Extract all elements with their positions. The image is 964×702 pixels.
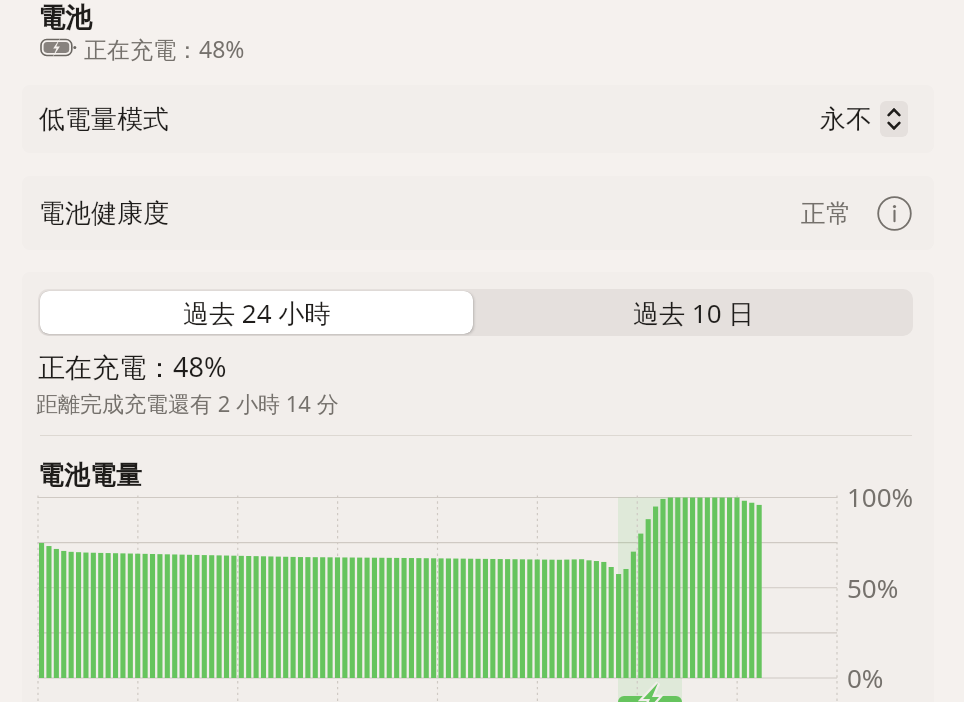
button[interactable]: 過去 24 小時 — [40, 291, 473, 334]
staticText: 50% — [847, 570, 899, 605]
staticText: 距離完成充電還有 2 小時 14 分 — [36, 388, 339, 418]
staticText: 永不 — [820, 103, 872, 136]
button[interactable]: 過去 10 日 — [475, 289, 913, 336]
staticText: 正常 — [801, 198, 851, 229]
staticText: 電池 — [38, 1, 92, 35]
staticText: 低電量模式 — [39, 103, 169, 136]
staticText: 電池健康度 — [39, 197, 169, 230]
other: 資訊 — [877, 196, 912, 231]
staticText: 正在充電：48% — [84, 33, 245, 64]
staticText: 100% — [847, 479, 914, 514]
staticText: 正在充電：48% — [38, 348, 227, 385]
button[interactable]: 電池健康度 — [22, 176, 934, 250]
staticText: 過去 24 小時 — [183, 295, 331, 331]
staticText: 0% — [847, 660, 884, 695]
button[interactable]: 低電量模式 — [22, 85, 934, 153]
staticText: 電池電量 — [38, 459, 142, 492]
staticText: 過去 10 日 — [633, 295, 755, 331]
